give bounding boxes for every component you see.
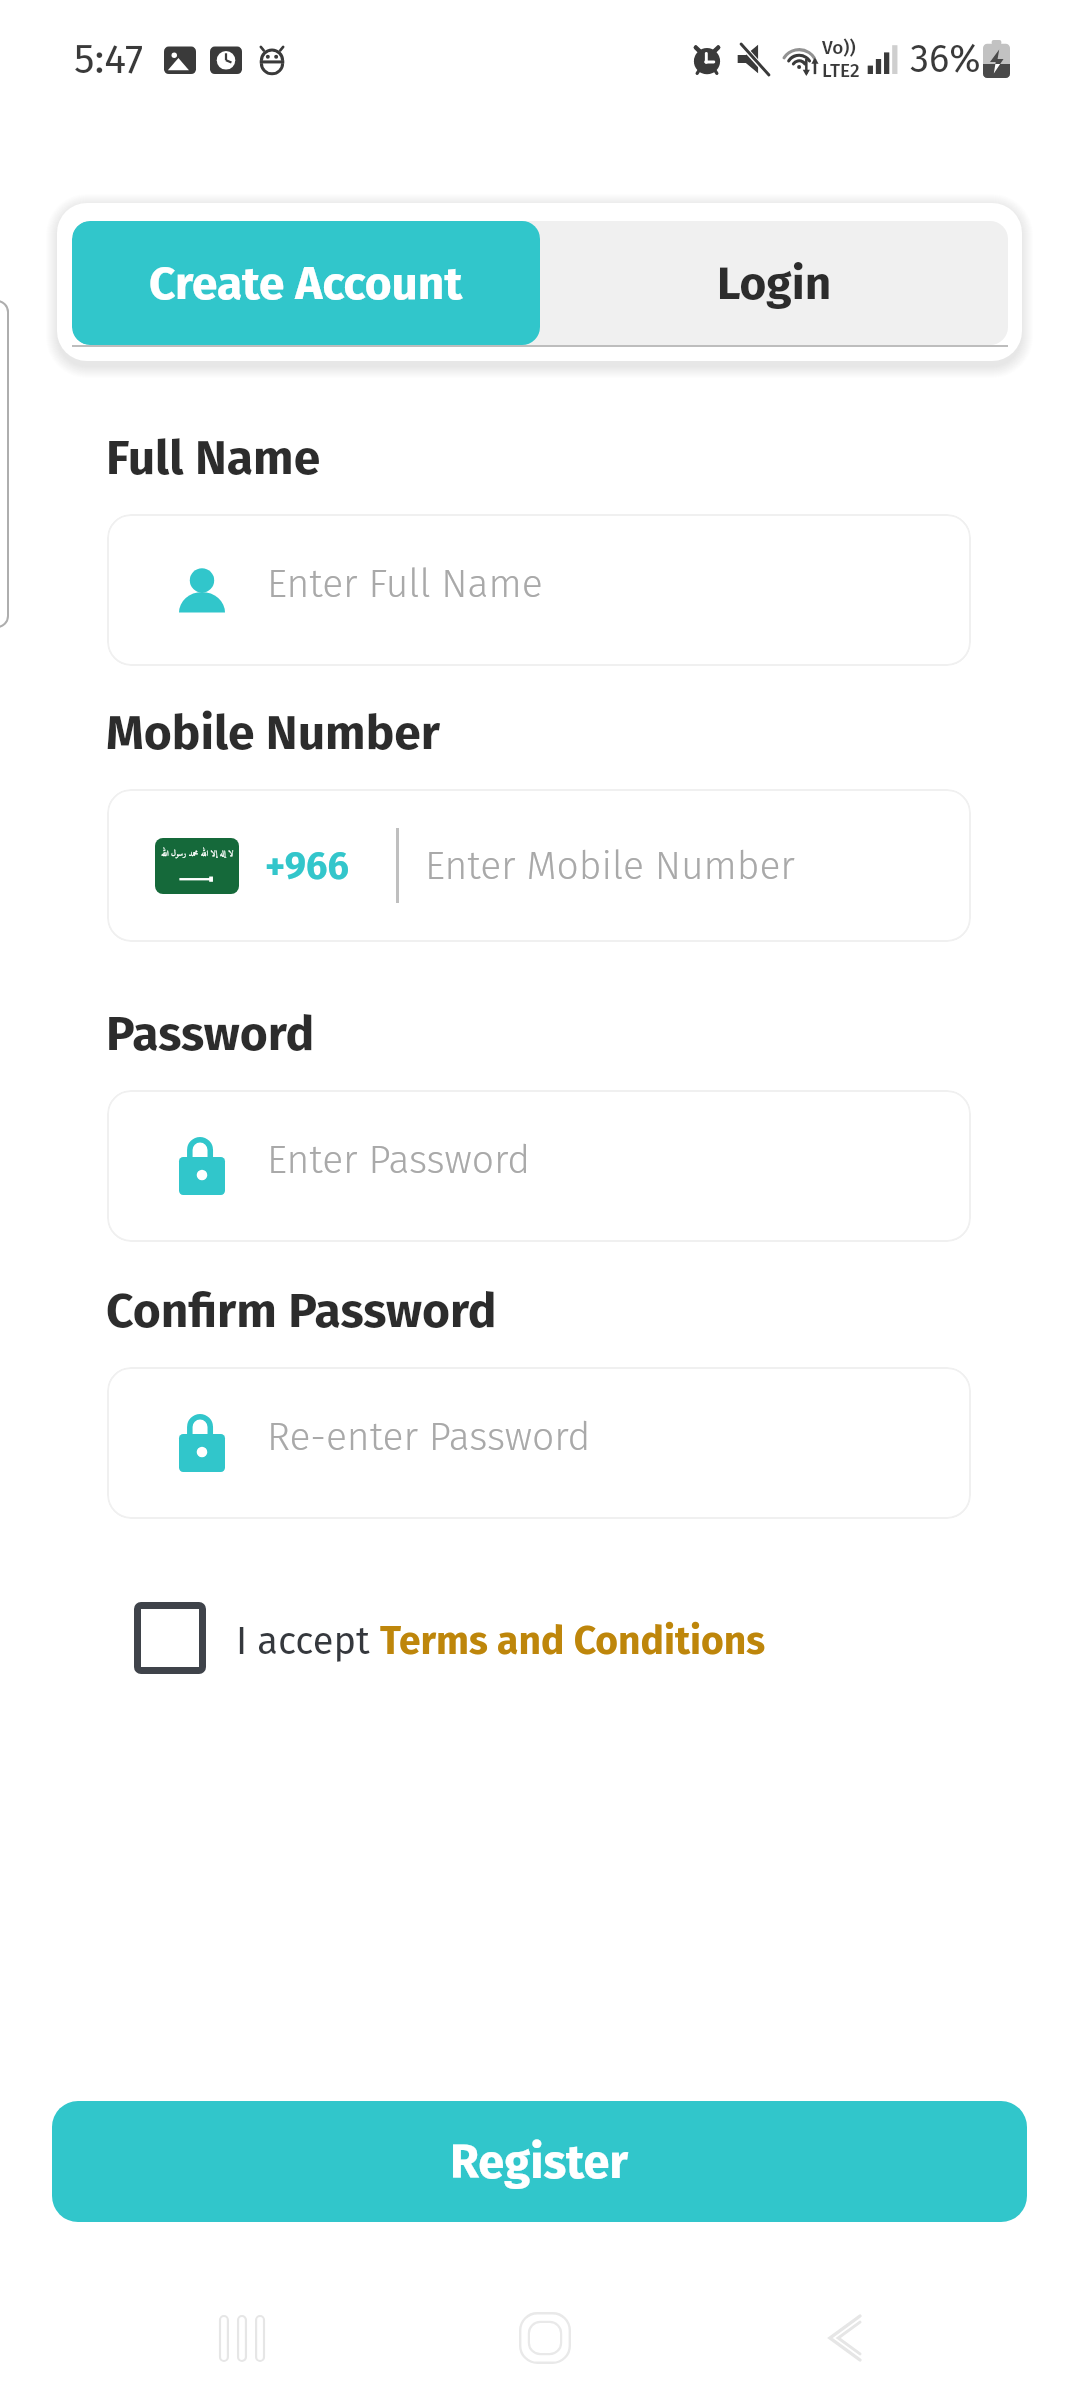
button[interactable]: Recents [162,2258,322,2400]
button[interactable]: Login [540,221,1008,345]
button[interactable]: لا إله إلا الله محمد رسول الله [155,838,349,894]
button[interactable]: Create Account [72,221,540,345]
staticText: Full Name [106,429,321,487]
staticText: Re-enter Password [267,1414,591,1461]
staticText: Mobile Number [106,704,441,762]
staticText: Register [450,2134,629,2190]
button[interactable]: Enter Password [107,1090,971,1242]
staticText: +966 [265,843,349,889]
staticText: LTE2 [822,59,860,82]
staticText: Terms and Conditions [380,1618,766,1665]
button[interactable]: Enter Full Name [107,514,971,666]
button[interactable]: Re-enter Password [107,1367,971,1519]
staticText: Password [106,1005,315,1063]
staticText: Enter Password [267,1137,531,1184]
button[interactable]: Home [465,2258,625,2400]
staticText: Confirm Password [106,1282,497,1340]
staticText: 5:47 [74,35,144,84]
staticText: 36% [910,36,981,82]
button[interactable]: Register [52,2101,1027,2222]
button[interactable]: Back [765,2258,925,2400]
staticText: لا إله إلا الله محمد رسول الله [161,847,234,861]
staticText: Login [717,256,832,311]
button[interactable]: I accept [134,1601,766,1681]
staticText: Enter Full Name [267,561,543,608]
staticText: Create Account [149,256,463,311]
staticText: Vo)) [822,36,856,59]
staticText: I accept [236,1618,380,1664]
staticText: Enter Mobile Number [425,843,795,890]
